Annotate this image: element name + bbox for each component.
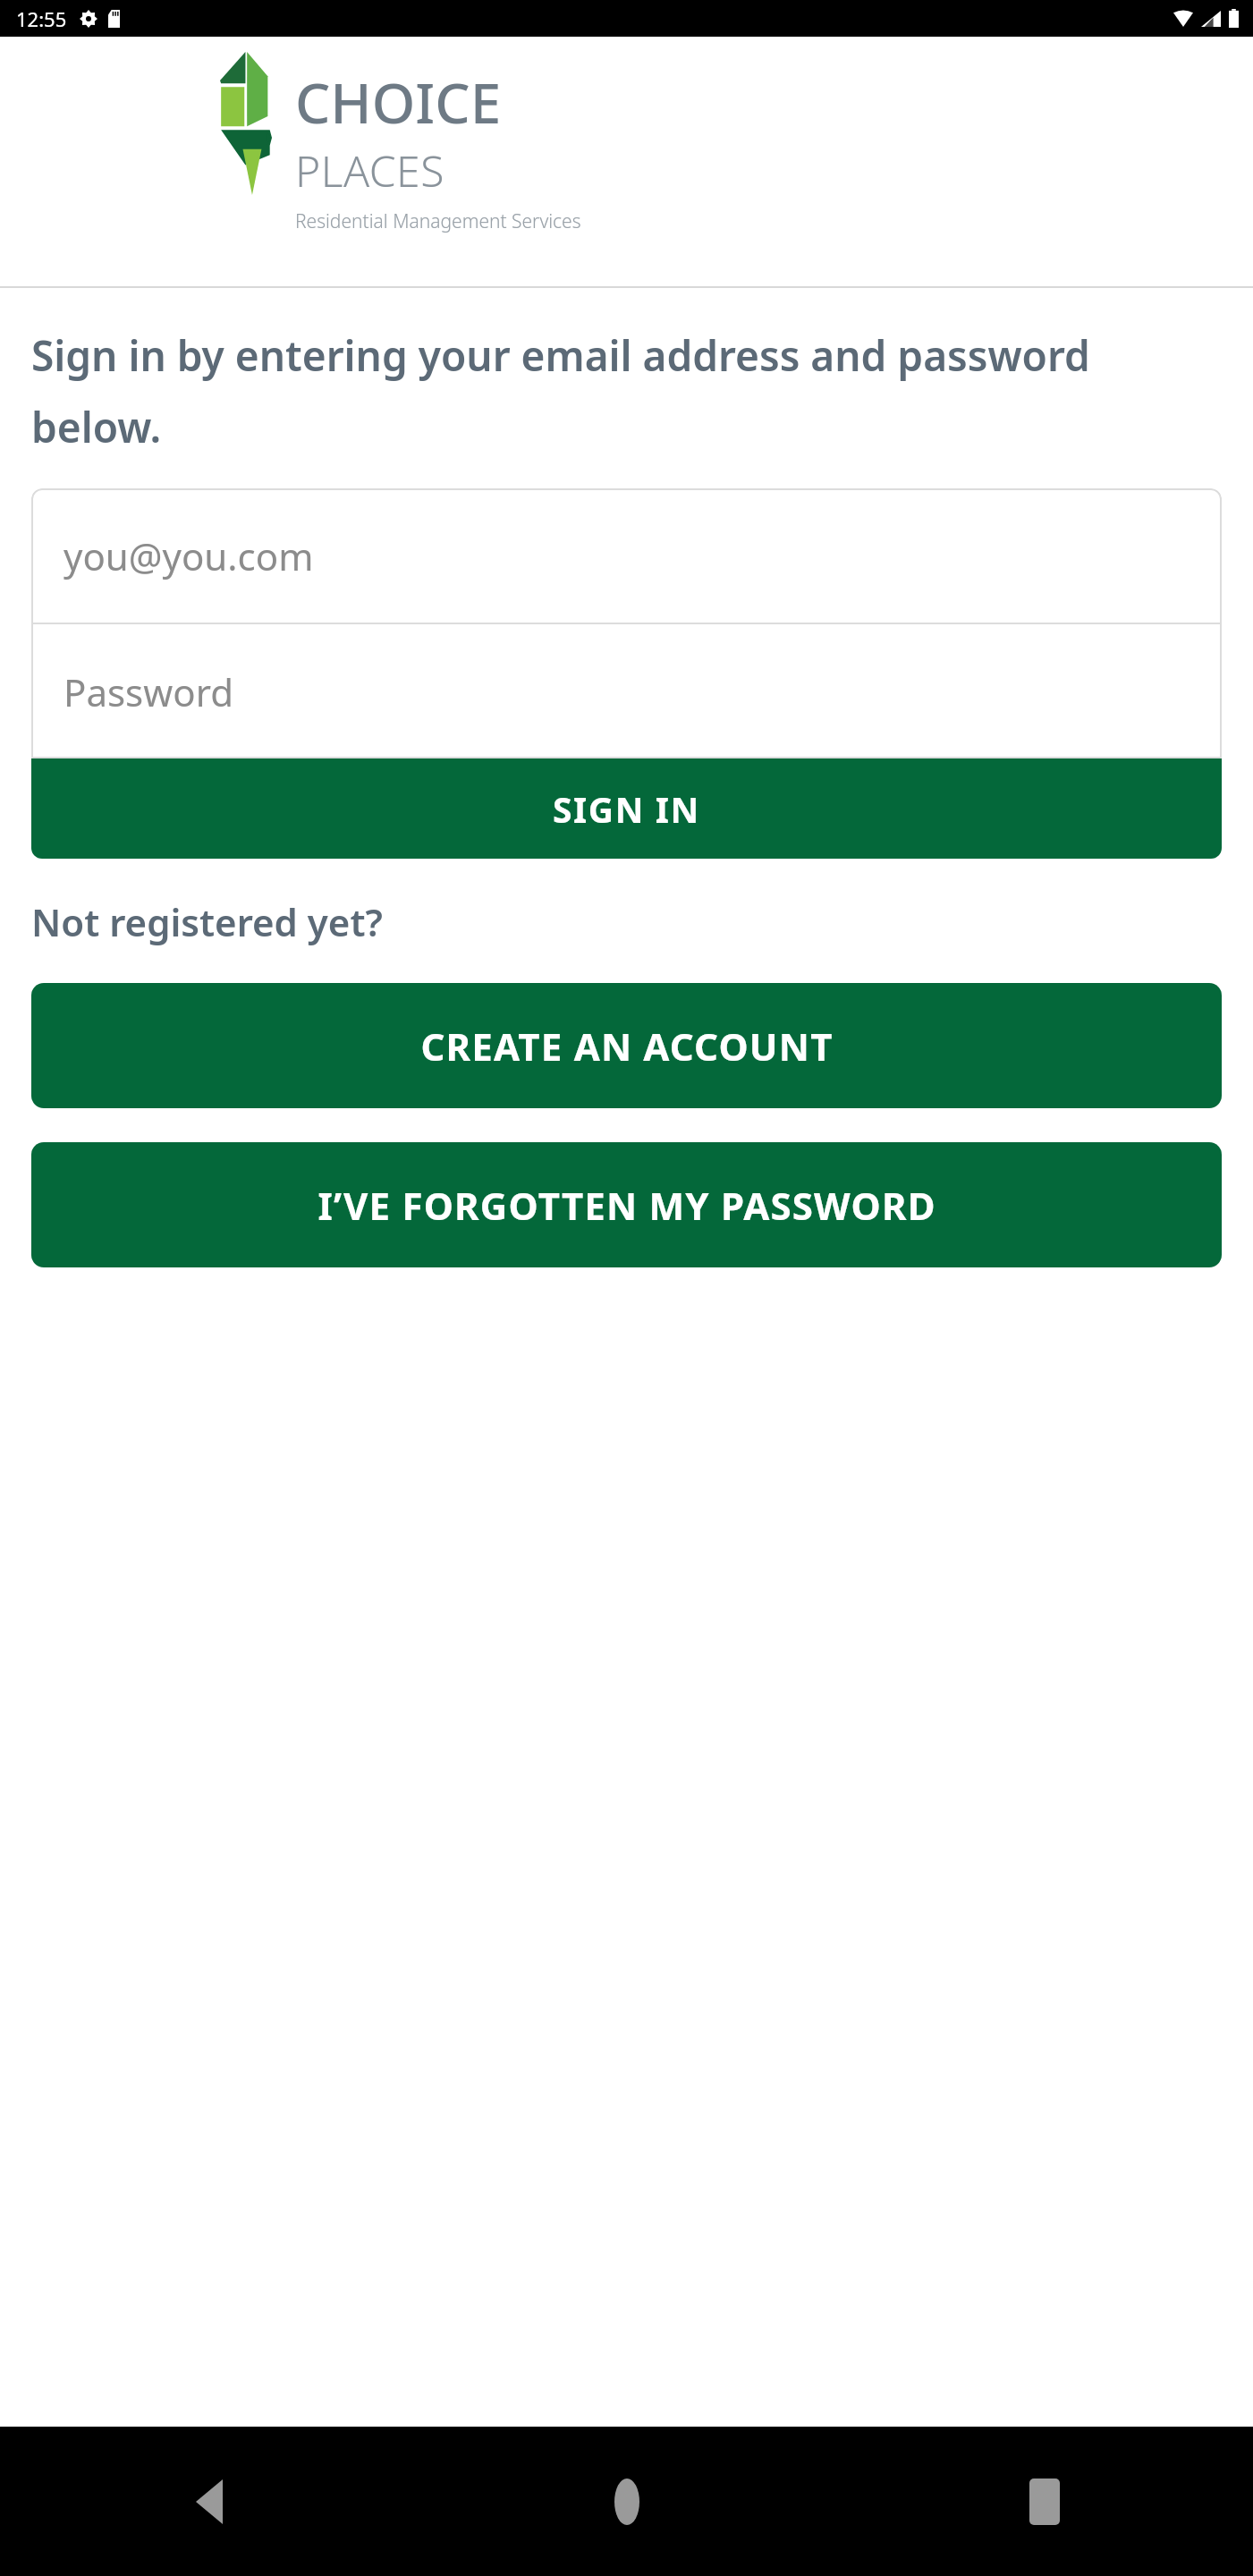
button[interactable]: Password bbox=[31, 624, 1222, 758]
staticText: CHOICE bbox=[295, 64, 502, 140]
button[interactable]: SIGN IN bbox=[31, 758, 1222, 859]
button[interactable]: I’VE FORGOTTEN MY PASSWORD bbox=[31, 1142, 1222, 1267]
button[interactable]: Recents bbox=[835, 2427, 1253, 2576]
button[interactable]: Back bbox=[0, 2427, 418, 2576]
button[interactable]: Home bbox=[418, 2427, 835, 2576]
button[interactable]: you@you.com bbox=[31, 488, 1222, 623]
staticText: Sign in by entering your email address a… bbox=[31, 327, 1222, 454]
button[interactable]: CREATE AN ACCOUNT bbox=[31, 983, 1222, 1108]
staticText: Not registered yet? bbox=[31, 896, 383, 947]
staticText: PLACES bbox=[295, 141, 444, 199]
staticText: I’VE FORGOTTEN MY PASSWORD bbox=[317, 1180, 936, 1231]
staticText: 12:55 bbox=[16, 5, 67, 32]
staticText: CREATE AN ACCOUNT bbox=[420, 1021, 834, 1072]
staticText: SIGN IN bbox=[553, 785, 700, 833]
staticText: Residential Management Services bbox=[295, 208, 581, 234]
staticText: Password bbox=[63, 666, 233, 717]
staticText: you@you.com bbox=[63, 530, 314, 581]
